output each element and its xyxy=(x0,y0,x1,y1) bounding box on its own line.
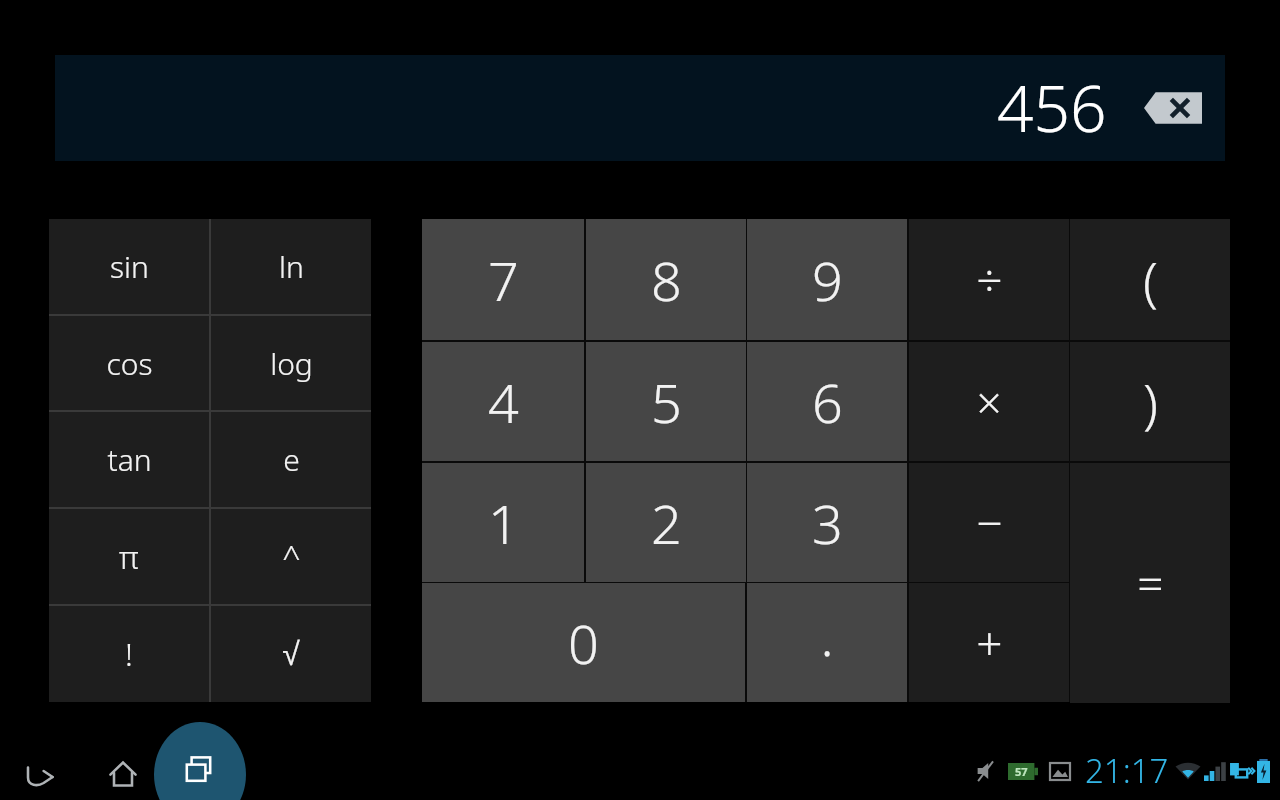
button[interactable]: . xyxy=(747,583,907,702)
button[interactable]: 8 xyxy=(586,219,746,340)
staticText: cos xyxy=(106,343,153,384)
button[interactable]: ! xyxy=(49,606,209,702)
button[interactable]: 0 xyxy=(422,583,745,702)
staticText: e xyxy=(283,439,300,480)
staticText: + xyxy=(976,611,1003,674)
staticText: 8 xyxy=(651,243,682,317)
button[interactable]: 5 xyxy=(586,342,746,461)
staticText: sin xyxy=(110,246,149,287)
staticText: ln xyxy=(279,246,304,287)
button[interactable]: 4 xyxy=(422,342,584,461)
staticText: . xyxy=(820,598,834,672)
staticText: ( xyxy=(1143,243,1158,317)
staticText: π xyxy=(119,535,139,579)
staticText: 57 xyxy=(1015,764,1028,779)
staticText: 2 xyxy=(651,486,682,560)
button[interactable]: 9 xyxy=(747,219,907,340)
button[interactable]: − xyxy=(909,463,1069,582)
button[interactable]: Home xyxy=(95,752,151,796)
button[interactable]: cos xyxy=(49,316,209,410)
button[interactable]: π xyxy=(49,509,209,604)
button[interactable]: = xyxy=(1070,463,1230,703)
staticText: 7 xyxy=(488,243,519,317)
staticText: − xyxy=(976,491,1003,554)
button[interactable]: ^ xyxy=(211,509,371,604)
staticText: 456 xyxy=(997,64,1107,151)
staticText: 21:17 xyxy=(1085,748,1169,793)
button[interactable]: × xyxy=(909,342,1069,461)
button[interactable]: Delete xyxy=(1144,90,1202,126)
button[interactable]: e xyxy=(211,412,371,507)
button[interactable]: + xyxy=(909,583,1069,702)
staticText: ! xyxy=(125,632,133,676)
staticText: = xyxy=(1137,552,1164,615)
button[interactable]: ( xyxy=(1070,219,1230,340)
button[interactable]: ) xyxy=(1070,342,1230,461)
button[interactable]: Back xyxy=(12,752,68,796)
staticText: 4 xyxy=(488,365,519,439)
staticText: tan xyxy=(107,439,152,480)
button[interactable]: Recent apps xyxy=(150,740,250,800)
button[interactable]: tan xyxy=(49,412,209,507)
button[interactable]: 2 xyxy=(586,463,746,582)
button[interactable]: 3 xyxy=(747,463,907,582)
button[interactable]: ÷ xyxy=(909,219,1069,340)
staticText: ^ xyxy=(282,535,301,579)
button[interactable]: log xyxy=(211,316,371,410)
staticText: √ xyxy=(282,636,300,672)
staticText: 6 xyxy=(812,365,843,439)
staticText: ) xyxy=(1143,365,1158,439)
button[interactable]: 1 xyxy=(422,463,584,582)
button[interactable]: sin xyxy=(49,219,209,314)
button[interactable]: 456 xyxy=(55,55,1225,161)
button[interactable]: 6 xyxy=(747,342,907,461)
staticText: log xyxy=(270,343,313,384)
staticText: 3 xyxy=(812,486,843,560)
staticText: × xyxy=(976,372,1002,432)
staticText: ÷ xyxy=(976,248,1003,311)
button[interactable]: 7 xyxy=(422,219,584,340)
staticText: 5 xyxy=(651,365,682,439)
button[interactable]: √ xyxy=(211,606,371,702)
staticText: 0 xyxy=(568,606,599,680)
staticText: 1 xyxy=(488,486,519,560)
staticText: 9 xyxy=(812,243,843,317)
button[interactable]: ln xyxy=(211,219,371,314)
